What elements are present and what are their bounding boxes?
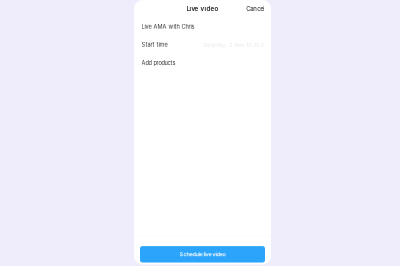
- staticText: Add products: [141, 59, 175, 66]
- staticText: Saturday, 2 Nov 12:30: [203, 41, 259, 48]
- staticText: Live AMA with Chris: [141, 23, 194, 30]
- staticText: Schedule live video: [179, 251, 225, 258]
- staticText: Cancel: [246, 5, 264, 12]
- button[interactable]: Cancel: [240, 2, 271, 15]
- button[interactable]: Start time: [134, 36, 271, 54]
- staticText: Start time: [141, 41, 167, 48]
- button[interactable]: Schedule live video: [140, 246, 265, 262]
- button[interactable]: Add products: [134, 54, 271, 72]
- staticText: Live video: [186, 5, 218, 12]
- button[interactable]: Live AMA with Chris: [134, 18, 271, 36]
